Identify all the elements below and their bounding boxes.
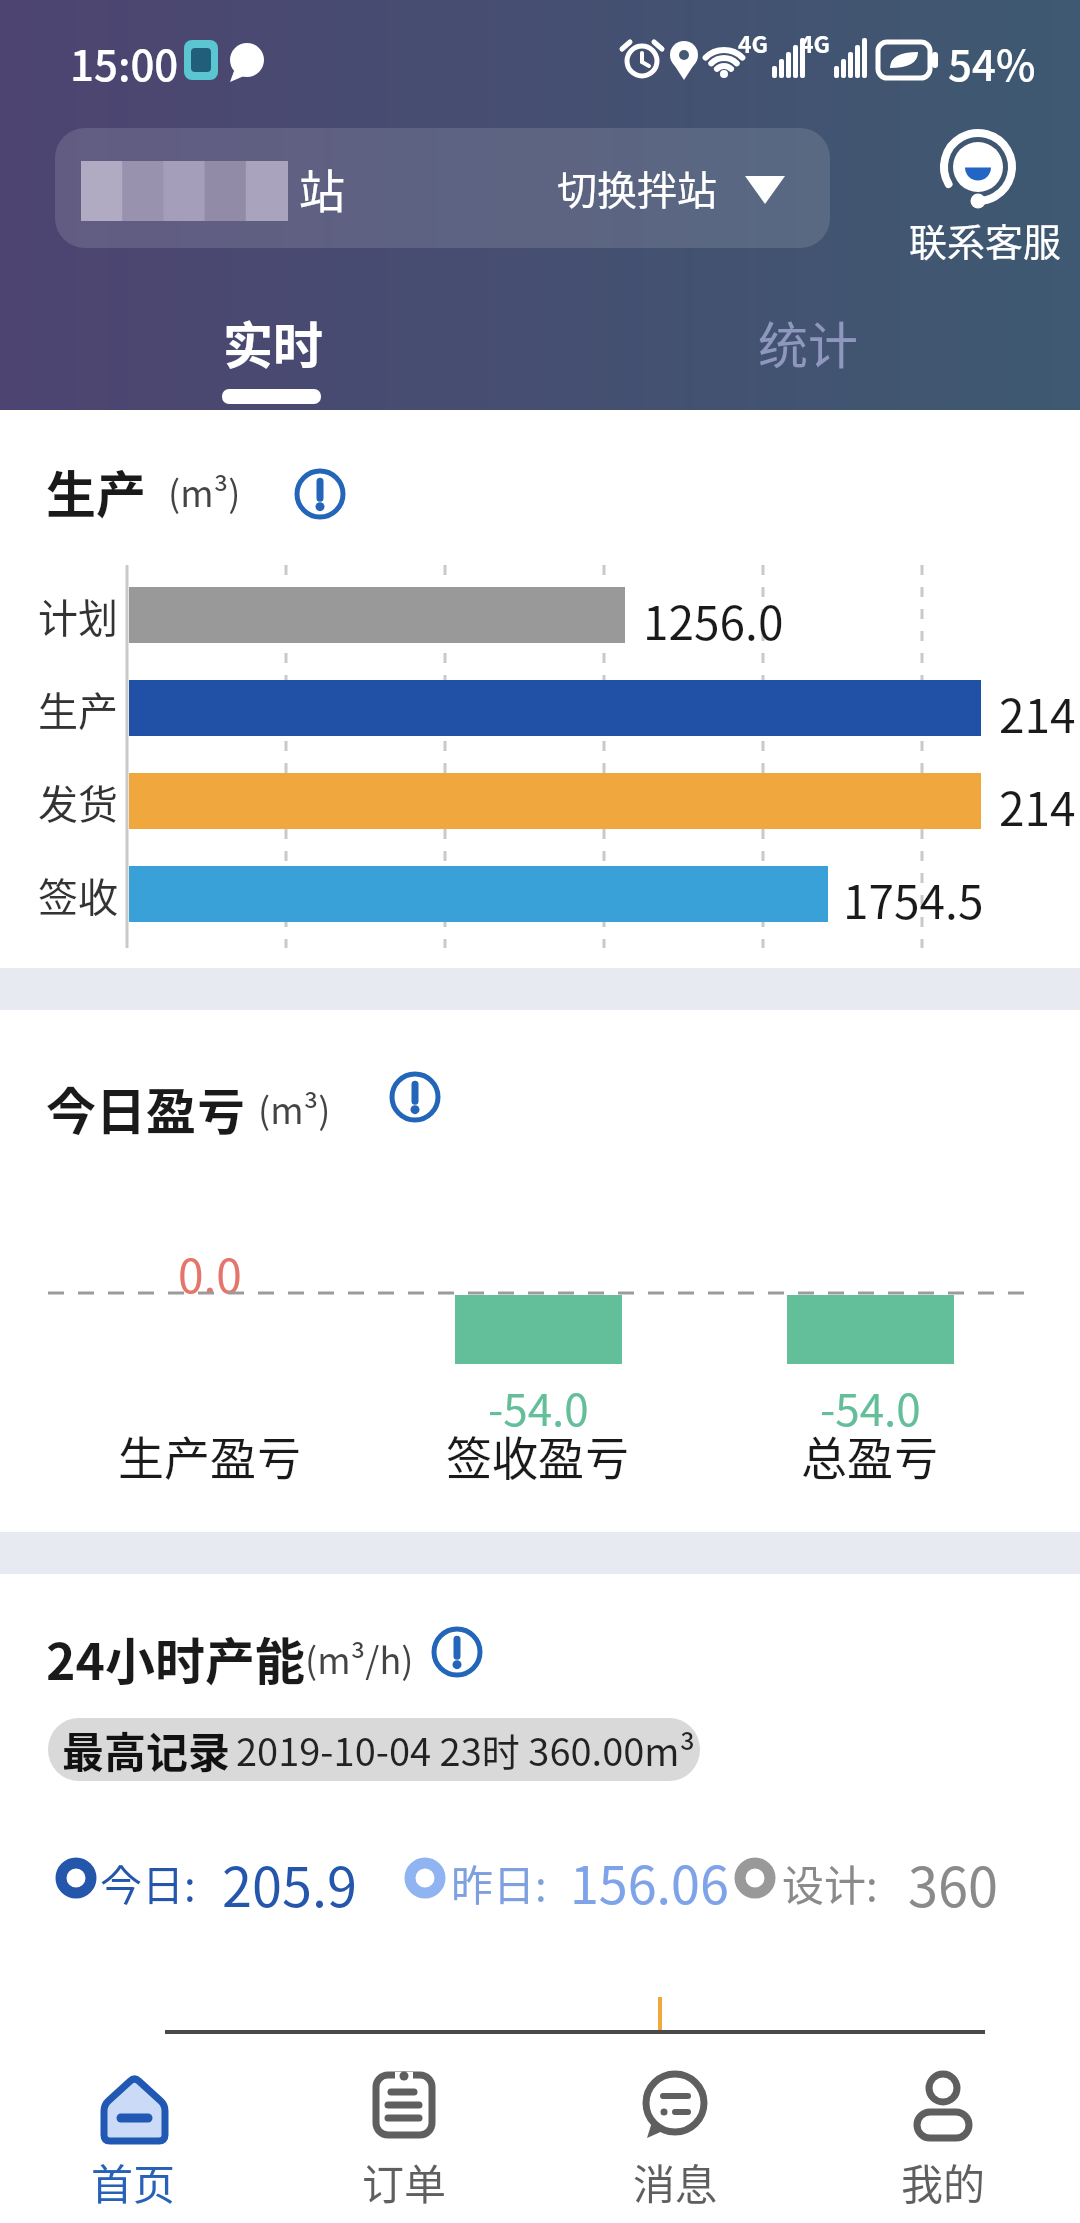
staticText: 计划 <box>38 587 118 643</box>
staticText: 生产 <box>46 455 146 521</box>
staticText: 联系客服 <box>909 212 1062 260</box>
staticText: 4G <box>800 26 831 56</box>
staticText: 生产 <box>38 680 118 736</box>
staticText: -54.0 <box>820 1375 921 1425</box>
button[interactable]: 站 <box>55 128 830 248</box>
staticText: 站 <box>299 155 345 222</box>
staticText: 214 <box>999 773 1076 829</box>
staticText: 首页 <box>91 2151 176 2201</box>
staticText: 最高记录 <box>62 1719 231 1780</box>
staticText: 生产盈亏 <box>118 1422 302 1480</box>
staticText: 1754.5 <box>843 866 984 922</box>
staticText: 1256.0 <box>643 587 784 643</box>
staticText: 切换拌站 <box>557 159 717 217</box>
staticText: 360 <box>908 1844 998 1914</box>
staticText: 4G <box>738 26 769 56</box>
button[interactable]: 订单 <box>334 2053 474 2213</box>
staticText: 156.06 <box>570 1844 729 1914</box>
button[interactable] <box>389 1071 441 1123</box>
staticText: 实时 <box>223 306 323 372</box>
staticText: 24小时产能 <box>46 1622 305 1688</box>
staticText: 今日盈亏 <box>46 1072 246 1138</box>
button[interactable] <box>431 1626 483 1678</box>
button[interactable]: 首页 <box>63 2053 203 2213</box>
staticText: 总盈亏 <box>801 1422 939 1480</box>
staticText: 统计 <box>758 306 858 372</box>
staticText: 订单 <box>362 2151 447 2201</box>
staticText: 2019-10-04 23时 360.00m³ <box>236 1722 692 1777</box>
staticText: (m³/h) <box>305 1632 414 1684</box>
staticText: -54.0 <box>488 1375 589 1425</box>
button[interactable]: 统计 <box>735 306 880 372</box>
staticText: 消息 <box>633 2151 718 2201</box>
staticText: 签收 <box>38 866 118 922</box>
staticText: 今日: <box>100 1852 196 1908</box>
button[interactable]: 我的 <box>873 2053 1013 2213</box>
button[interactable] <box>294 468 346 520</box>
staticText: 签收盈亏 <box>446 1422 630 1480</box>
button[interactable]: 实时 <box>200 306 345 372</box>
staticText: 设计: <box>782 1852 878 1908</box>
staticText: 我的 <box>901 2151 986 2201</box>
staticText: 昨日: <box>451 1852 547 1908</box>
staticText: 54% <box>948 32 1036 88</box>
button[interactable]: 消息 <box>605 2053 745 2213</box>
staticText: 0.0 <box>178 1240 242 1292</box>
staticText: 214 <box>999 680 1076 736</box>
staticText: (m³) <box>258 1082 331 1134</box>
button[interactable] <box>900 118 1070 264</box>
staticText: 15:00 <box>70 32 179 88</box>
staticText: 205.9 <box>222 1844 357 1914</box>
staticText: 发货 <box>38 773 118 829</box>
staticText: (m³) <box>168 465 241 517</box>
